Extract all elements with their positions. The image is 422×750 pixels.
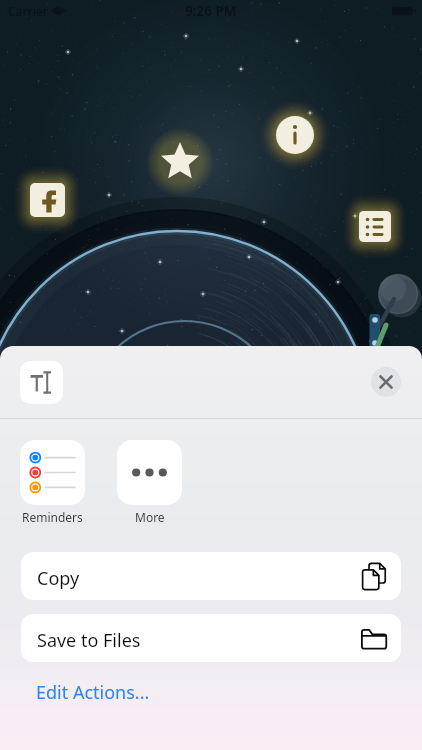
button[interactable]: Text preview [20, 361, 63, 404]
staticText: Save to Files [37, 628, 141, 653]
button[interactable]: Save to Files [21, 614, 401, 662]
staticText: Copy [37, 566, 80, 591]
button[interactable]: More [117, 440, 182, 525]
button[interactable]: Edit Actions... [36, 680, 150, 705]
button[interactable]: Close [371, 367, 401, 397]
staticText: Reminders [22, 509, 83, 525]
staticText: 9:26 PM [185, 2, 237, 20]
staticText: Edit Actions... [36, 680, 150, 705]
button[interactable]: Copy [21, 552, 401, 600]
staticText: Carrier [8, 3, 48, 19]
staticText: More [135, 509, 165, 525]
button[interactable]: Reminders [20, 440, 85, 525]
